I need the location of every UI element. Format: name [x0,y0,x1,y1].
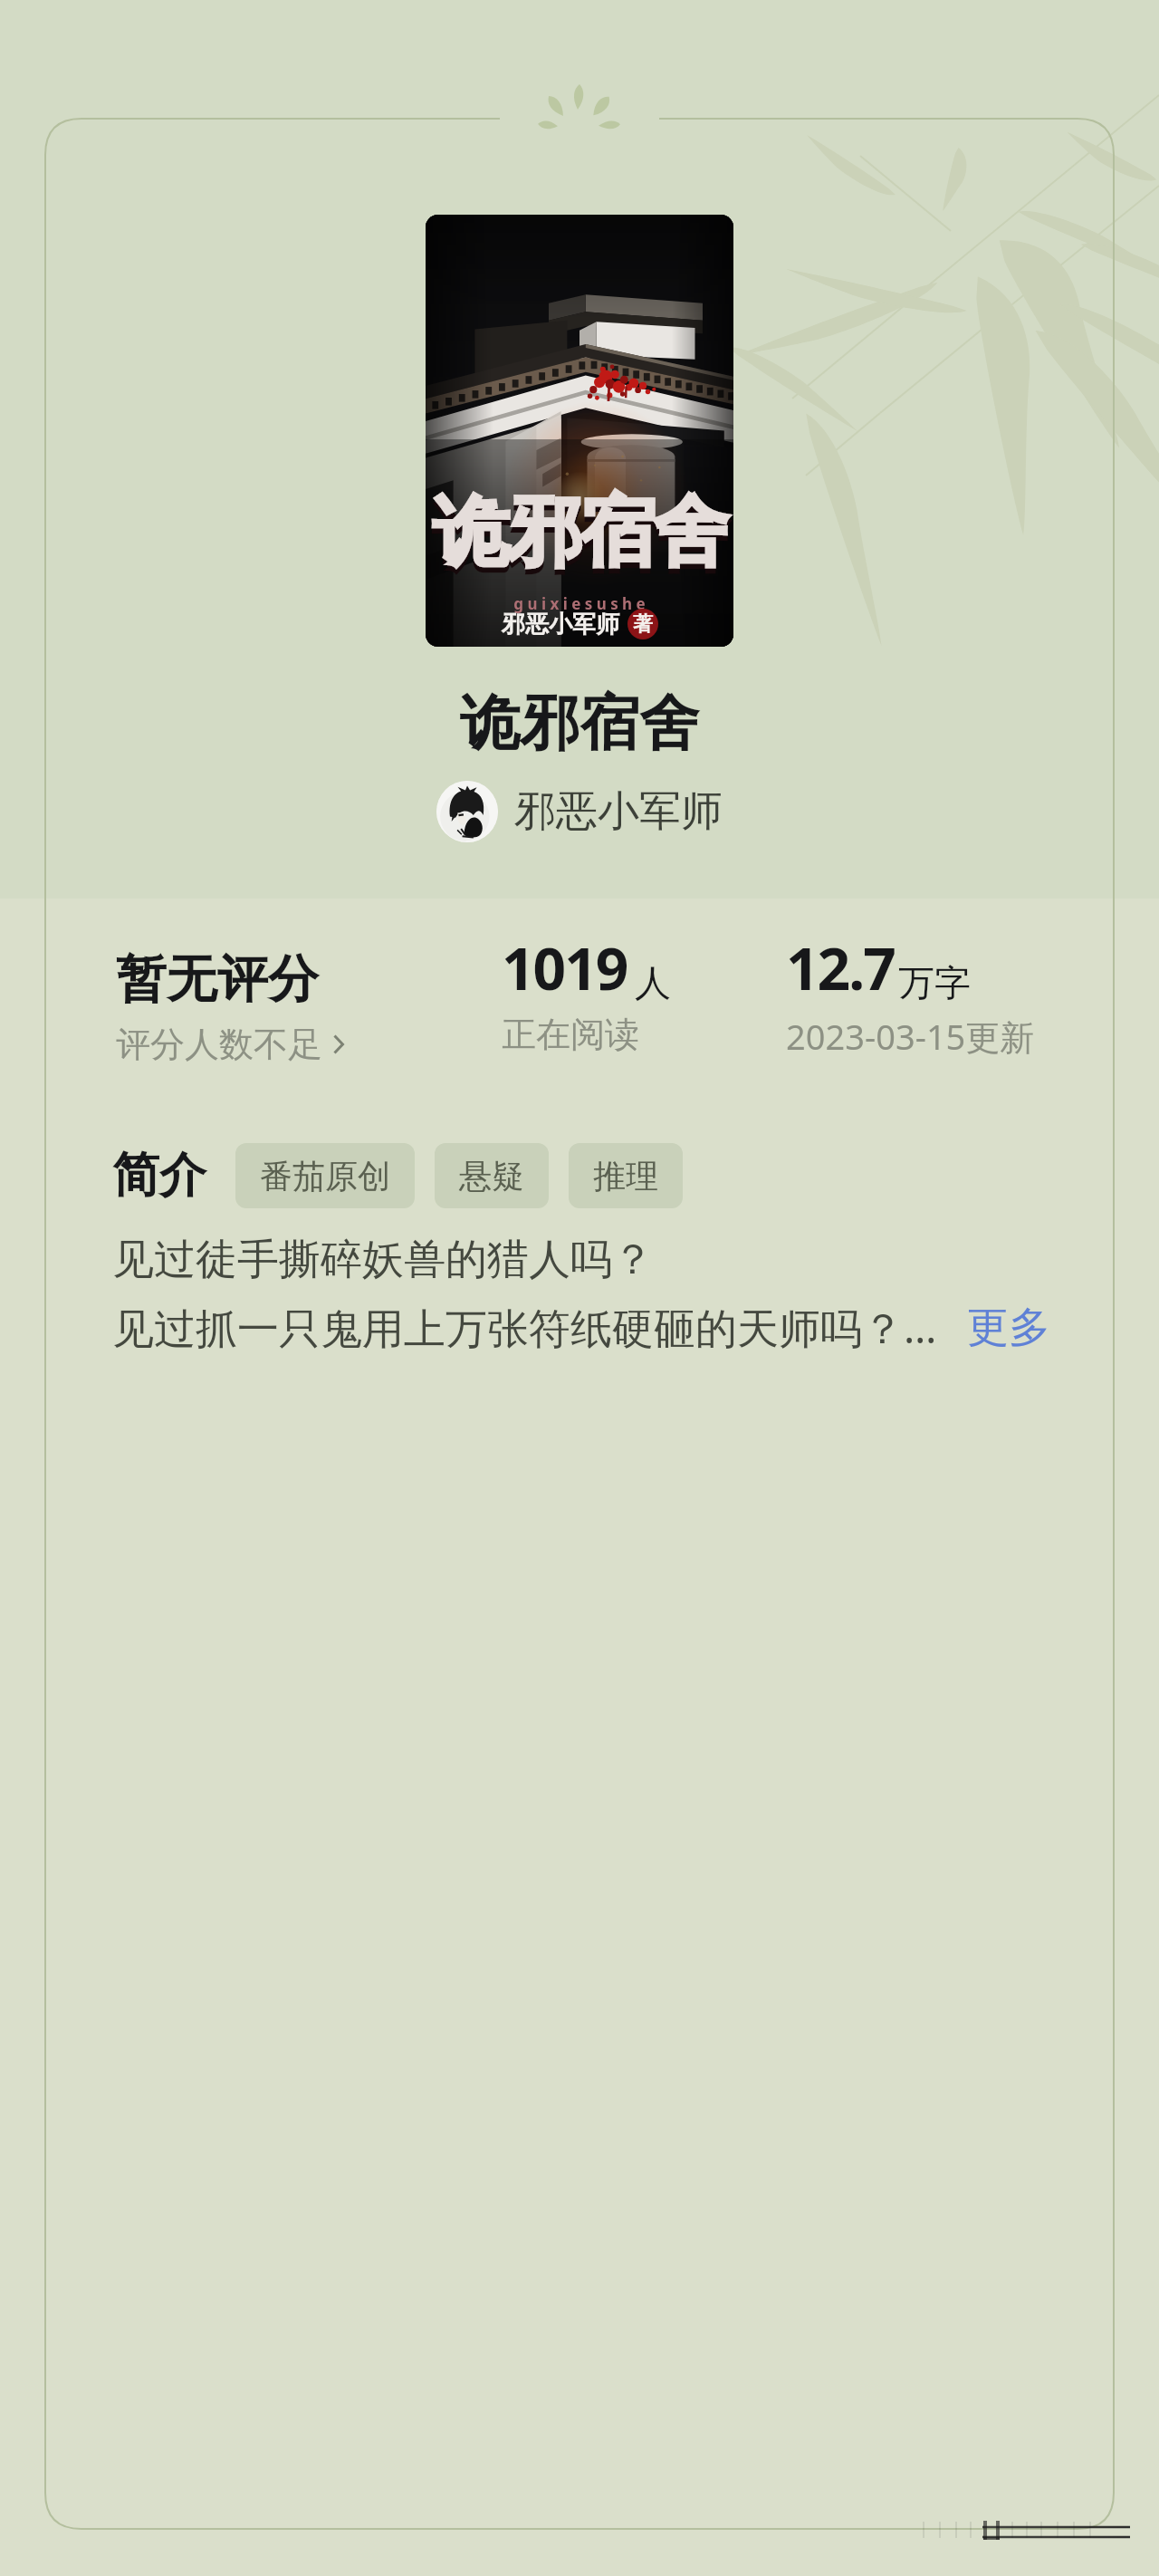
staticText: 1019 [502,928,627,1007]
button[interactable]: 更多 [967,1302,1050,1354]
staticText: 推理 [593,1156,658,1197]
staticText: 暂无评分 [116,947,319,1012]
staticText: g u i x i e s u s h e [426,593,733,614]
staticText: 邪恶小军师 [514,785,723,838]
button[interactable]: 暂无评分 [116,947,344,1066]
staticText: 人 [635,960,671,1005]
button[interactable]: 邪恶小军师 [436,781,723,842]
button[interactable]: Book cover [426,215,733,647]
button[interactable]: 番茄原创 [235,1143,415,1208]
staticText: 12.7 [786,928,895,1007]
staticText: 评分人数不足 [116,1023,322,1066]
staticText: 诡邪宿舍 [426,485,733,581]
staticText: 邪恶小军师 [502,610,619,639]
staticText: 诡邪宿舍 [0,686,1159,761]
staticText: 见过徒手撕碎妖兽的猎人吗？ [112,1234,654,1286]
staticText: 著 [633,611,653,637]
button[interactable]: 推理 [569,1143,683,1208]
staticText: 万字 [898,960,971,1005]
button[interactable]: 悬疑 [435,1143,549,1208]
staticText: 番茄原创 [260,1156,390,1197]
staticText: 见过抓一只鬼用上万张符纸硬砸的天师吗？… [112,1299,937,1356]
staticText: 2023-03-15更新 [786,1013,1035,1060]
staticText: 正在阅读 [502,1013,639,1056]
staticText: 悬疑 [459,1156,524,1197]
staticText: 诡邪宿舍 [426,490,733,586]
staticText: 简介 [112,1146,206,1206]
